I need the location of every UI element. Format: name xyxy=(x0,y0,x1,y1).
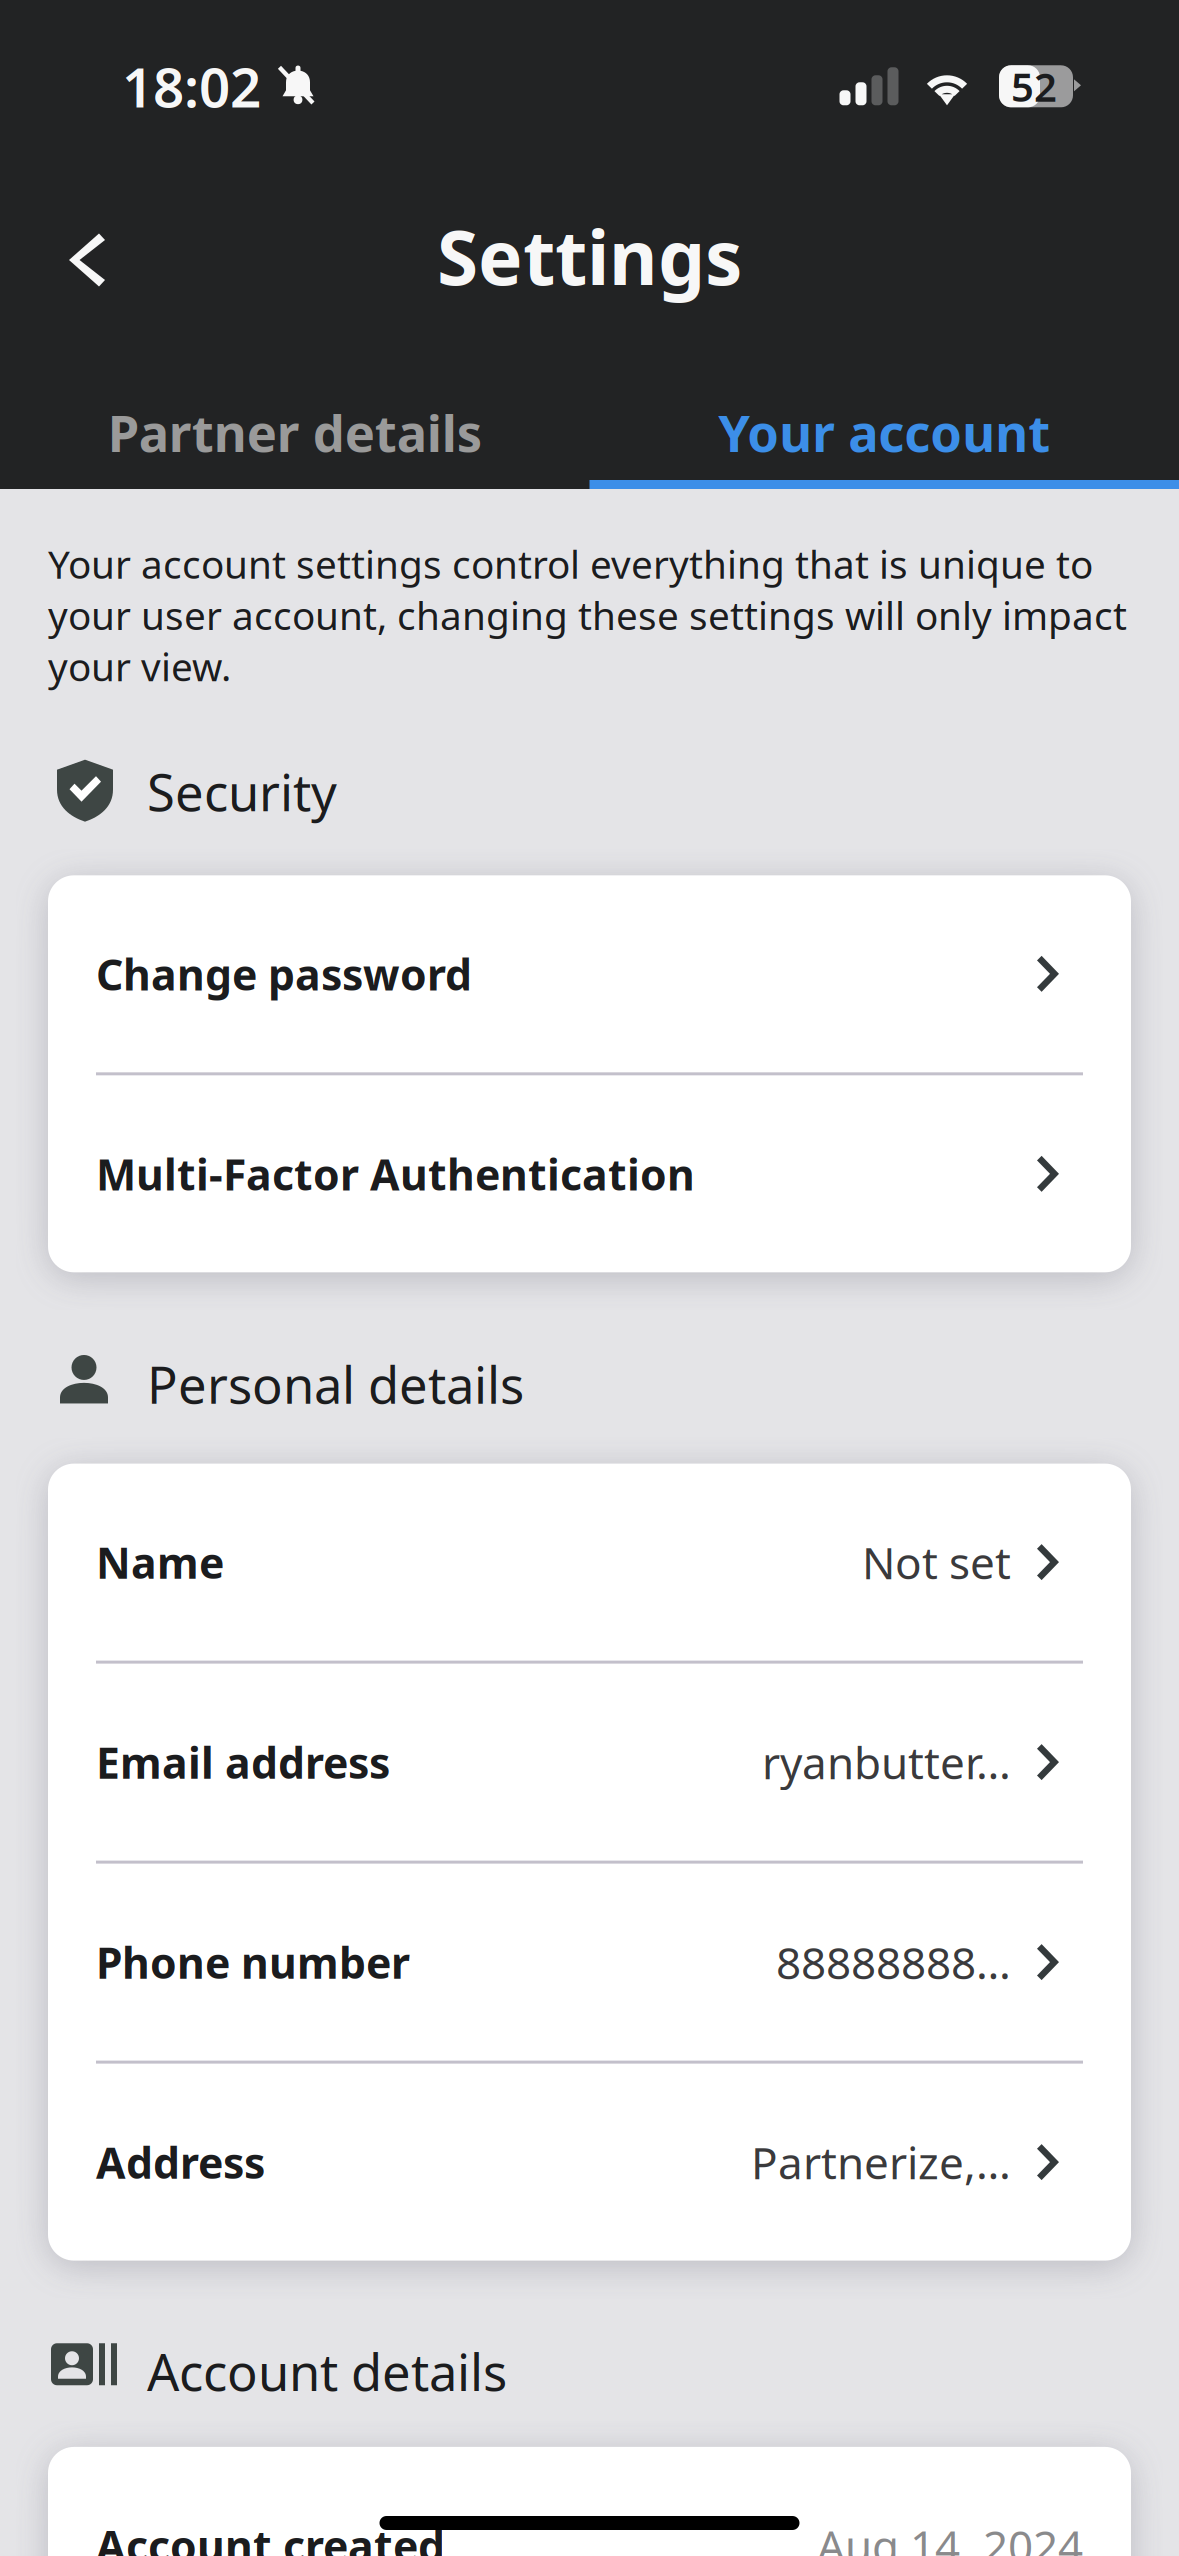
button[interactable]: Address xyxy=(48,2064,1131,2261)
staticText: Phone number xyxy=(96,1934,410,1990)
staticText: Account details xyxy=(147,2338,507,2405)
button[interactable]: Phone number xyxy=(48,1864,1131,2061)
staticText: Multi-Factor Authentication xyxy=(96,1145,695,1202)
staticText: Partner details xyxy=(108,399,482,466)
staticText: Not set xyxy=(862,1533,1011,1591)
staticText: Email address xyxy=(96,1734,390,1790)
button[interactable]: Partner details xyxy=(0,370,589,489)
button[interactable]: Email address xyxy=(48,1664,1131,1861)
staticText: Your account xyxy=(718,399,1050,466)
staticText: Name xyxy=(96,1534,224,1590)
staticText: 88888888… xyxy=(776,1933,1011,1991)
staticText: Settings xyxy=(437,206,742,306)
staticText: Address xyxy=(96,2134,265,2190)
staticText: Change password xyxy=(96,945,472,1002)
button[interactable]: Your account xyxy=(589,370,1179,489)
button[interactable]: Back xyxy=(38,194,132,318)
staticText: Aug 14, 2024 xyxy=(817,2516,1083,2556)
button[interactable]: Change password xyxy=(48,875,1131,1072)
staticText: Security xyxy=(147,758,337,825)
staticText: Account created xyxy=(96,2517,445,2556)
staticText: Partnerize,… xyxy=(751,2133,1011,2191)
button[interactable]: Account created xyxy=(48,2447,1131,2556)
button[interactable]: Name xyxy=(48,1464,1131,1661)
button[interactable]: Multi-Factor Authentication xyxy=(48,1075,1131,1272)
staticText: ryanbutter… xyxy=(762,1733,1011,1791)
staticText: 52 xyxy=(1011,60,1057,113)
staticText: 18:02 xyxy=(122,50,261,123)
staticText: Your account settings control everything… xyxy=(48,538,1127,692)
staticText: Personal details xyxy=(147,1350,524,1418)
